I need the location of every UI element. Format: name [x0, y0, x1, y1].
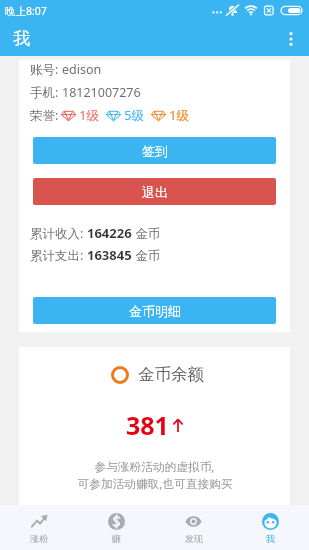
staticText: 晚上8:07: [5, 4, 47, 18]
staticText: 发现: [185, 533, 203, 544]
button[interactable]: More options: [273, 21, 309, 56]
button[interactable]: 我: [232, 505, 309, 550]
staticText: 手机:: [30, 84, 62, 101]
staticText: 账号:: [30, 61, 62, 78]
button[interactable]: 赚: [78, 505, 155, 550]
button[interactable]: 签到: [33, 137, 276, 164]
staticText: 涨粉: [30, 533, 48, 544]
staticText: 164226: [87, 224, 132, 242]
button[interactable]: 退出: [33, 178, 276, 205]
staticText: 累计支出:: [30, 247, 87, 264]
staticText: 金币余额: [138, 364, 204, 385]
staticText: 我: [266, 533, 275, 544]
staticText: 签到: [142, 143, 168, 159]
staticText: 金币: [132, 225, 161, 242]
staticText: 荣誉:: [30, 107, 59, 124]
staticText: 可参加活动赚取,也可直接购买: [77, 475, 233, 491]
staticText: 金币明细: [129, 303, 181, 319]
staticText: 5级: [121, 107, 144, 124]
staticText: edison: [62, 61, 102, 78]
staticText: 我: [13, 28, 30, 49]
staticText: 381: [126, 408, 169, 442]
staticText: 1级: [166, 107, 189, 124]
button[interactable]: 发现: [155, 505, 232, 550]
staticText: 1级: [76, 107, 99, 124]
button[interactable]: 金币明细: [33, 297, 276, 324]
staticText: 163845: [87, 246, 132, 264]
staticText: 退出: [142, 184, 168, 200]
staticText: 金币: [132, 247, 161, 264]
staticText: 赚: [112, 533, 121, 544]
staticText: 参与涨粉活动的虚拟币,: [94, 458, 215, 474]
staticText: 18121007276: [62, 84, 141, 101]
button[interactable]: 涨粉: [0, 505, 78, 550]
staticText: 累计收入:: [30, 225, 87, 242]
